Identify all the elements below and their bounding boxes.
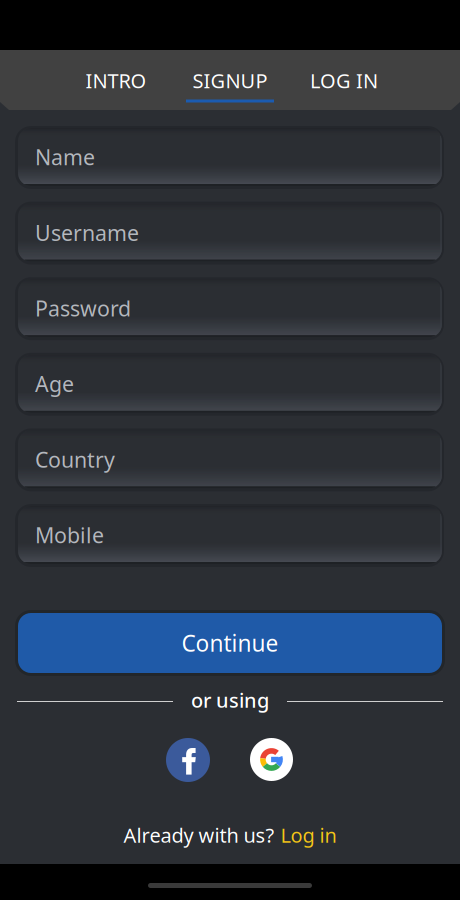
staticText: LOG IN xyxy=(310,67,378,94)
staticText: or using xyxy=(191,687,269,713)
staticText: Name xyxy=(35,143,95,171)
staticText: Age xyxy=(35,370,74,398)
button[interactable]: INTRO xyxy=(59,50,173,110)
staticText: Country xyxy=(35,445,115,473)
staticText: Already with us? xyxy=(123,822,274,848)
staticText: Mobile xyxy=(35,521,104,549)
button[interactable]: Mobile xyxy=(18,506,442,564)
button[interactable]: Name xyxy=(18,128,442,186)
staticText: SIGNUP xyxy=(192,67,267,94)
button[interactable]: Age xyxy=(18,355,442,413)
staticText: INTRO xyxy=(85,67,146,94)
button[interactable]: Continue xyxy=(18,613,442,673)
button[interactable]: Sign up with Google xyxy=(250,738,293,781)
button[interactable]: SIGNUP xyxy=(173,50,287,110)
staticText: Log in xyxy=(280,822,336,848)
button[interactable]: LOG IN xyxy=(287,50,401,110)
button[interactable]: Log in xyxy=(280,822,336,848)
staticText: Username xyxy=(35,218,139,247)
staticText: Continue xyxy=(181,628,278,658)
button[interactable]: Country xyxy=(18,430,442,488)
button[interactable]: Password xyxy=(18,279,442,337)
button[interactable]: Sign up with Facebook xyxy=(166,738,210,782)
button[interactable]: Username xyxy=(18,204,442,262)
staticText: Password xyxy=(35,294,131,322)
